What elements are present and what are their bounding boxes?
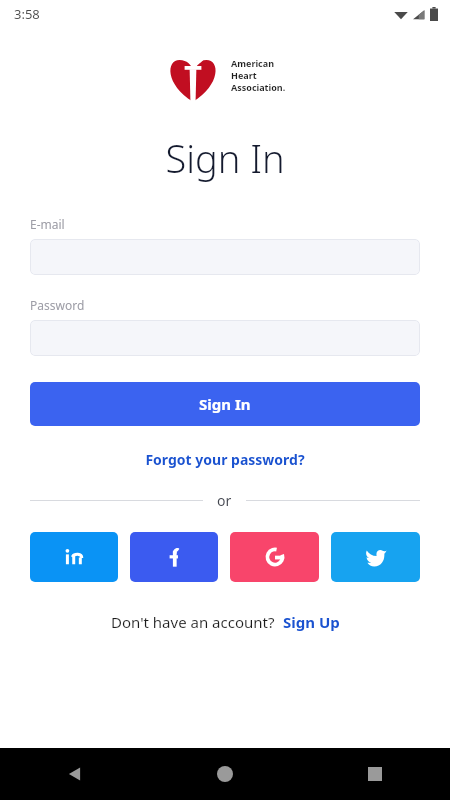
button[interactable]: Sign Up [283, 612, 340, 632]
button[interactable] [30, 320, 420, 356]
button[interactable]: Facebook [130, 532, 218, 582]
staticText: 3:58 [14, 5, 40, 23]
staticText: Association. [231, 81, 286, 93]
button[interactable]: Google [230, 532, 319, 582]
staticText: Don't have an account? [111, 612, 275, 632]
button[interactable]: Twitter [331, 532, 420, 582]
button[interactable]: Recent apps [300, 748, 450, 800]
button[interactable]: LinkedIn [30, 532, 118, 582]
staticText: or [217, 491, 232, 510]
staticText: American [231, 57, 274, 69]
button[interactable]: Back [0, 748, 150, 800]
staticText: Password [30, 297, 85, 313]
staticText: Sign In [199, 394, 251, 414]
staticText: E-mail [30, 216, 65, 232]
button[interactable]: Sign In [30, 382, 420, 426]
staticText: Heart [231, 69, 257, 81]
button[interactable]: Home [150, 748, 300, 800]
staticText: Sign In [0, 132, 450, 184]
button[interactable] [30, 239, 420, 275]
button[interactable]: Forgot your password? [0, 448, 450, 471]
